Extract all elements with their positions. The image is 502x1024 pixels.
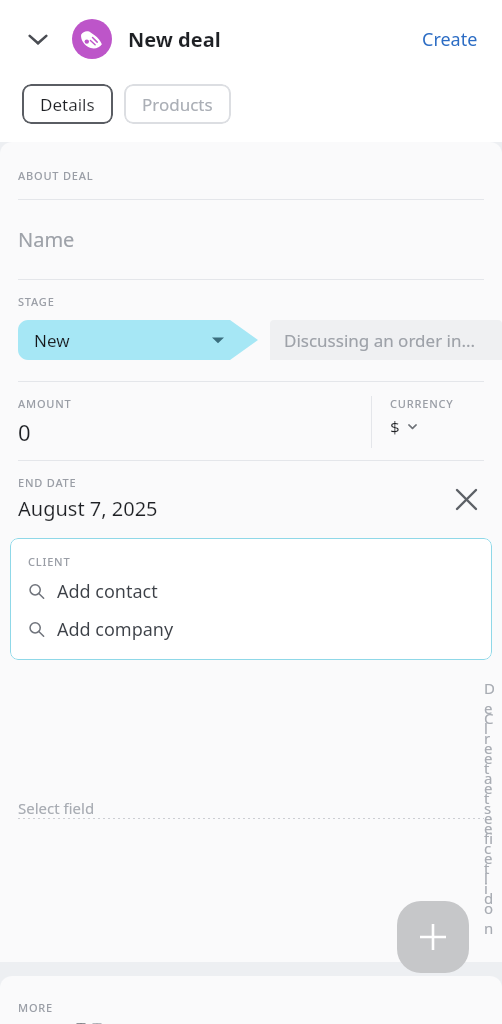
staticText: CLIENT <box>28 554 71 569</box>
button[interactable]: Discussing an order in... <box>270 320 502 360</box>
staticText: Add contact <box>57 579 158 604</box>
staticText: Discussing an order in... <box>284 329 476 352</box>
button[interactable]: Add company <box>28 617 478 642</box>
button[interactable]: Details <box>22 84 113 124</box>
button[interactable]: END DATE <box>0 475 502 522</box>
staticText: END DATE <box>18 475 77 490</box>
staticText: $ <box>390 415 400 438</box>
staticText: Add company <box>57 617 174 642</box>
staticText: New <box>34 329 70 352</box>
button[interactable]: Add <box>397 901 469 973</box>
button[interactable]: Select field <box>18 798 484 820</box>
staticText: Select field <box>18 798 95 818</box>
staticText: AMOUNT <box>18 396 72 411</box>
button[interactable]: CURRENCY <box>372 396 502 438</box>
button[interactable]: Add contact <box>28 579 478 604</box>
staticText: Name <box>18 226 75 253</box>
staticText: New deal <box>128 26 221 53</box>
button[interactable]: Collapse <box>18 19 58 59</box>
staticText: Create <box>422 27 478 52</box>
button[interactable]: Name <box>0 226 502 253</box>
staticText: CURRENCY <box>390 396 454 411</box>
staticText: Details <box>40 93 95 116</box>
staticText: 0 <box>18 417 31 447</box>
staticText: STAGE <box>18 294 55 309</box>
button[interactable]: Products <box>124 84 231 124</box>
button[interactable]: New <box>18 320 258 360</box>
staticText: August 7, 2025 <box>18 495 158 522</box>
staticText: ABOUT DEAL <box>18 168 94 183</box>
button[interactable]: Create <box>416 21 484 58</box>
button[interactable]: Clear end date <box>448 481 484 517</box>
staticText: MORE <box>18 1000 54 1015</box>
staticText: Products <box>142 93 213 116</box>
button[interactable]: AMOUNT <box>0 396 371 447</box>
